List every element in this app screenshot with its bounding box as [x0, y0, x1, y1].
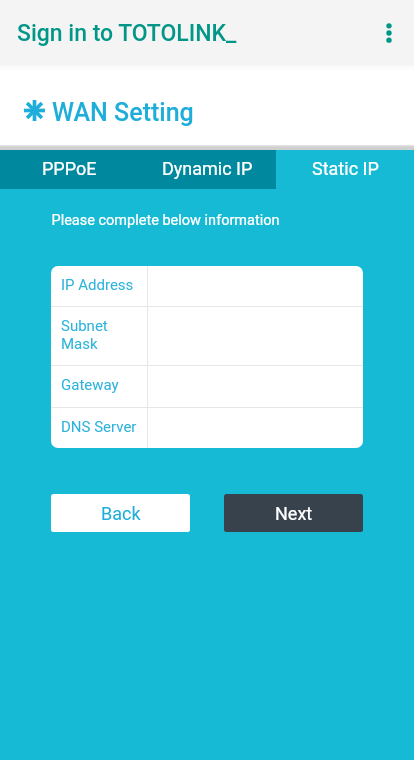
button[interactable]: PPPoE	[0, 150, 138, 189]
staticText: WAN Setting	[52, 98, 194, 127]
staticText: Next	[275, 503, 313, 524]
button[interactable]: Static IP	[276, 150, 414, 189]
button[interactable]: DNS Server	[51, 408, 363, 448]
staticText: IP Address	[61, 276, 134, 294]
staticText: DNS Server	[61, 418, 137, 436]
button[interactable]: Gateway	[51, 366, 363, 407]
button[interactable]: Next	[224, 494, 363, 532]
button[interactable]: Dynamic IP	[138, 150, 276, 189]
button[interactable]: IP Address	[51, 266, 363, 306]
staticText: PPPoE	[42, 158, 97, 179]
staticText: Mask	[61, 335, 98, 353]
staticText: Gateway	[61, 376, 119, 394]
button[interactable]: Subnet	[51, 307, 363, 365]
staticText: Back	[101, 503, 141, 524]
button[interactable]: More options	[367, 11, 411, 55]
staticText: Subnet	[61, 317, 108, 335]
staticText: Sign in to TOTOLINK_	[17, 20, 237, 47]
staticText: Please complete below information	[51, 212, 280, 229]
staticText: Static IP	[312, 158, 379, 179]
button[interactable]: Back	[51, 494, 190, 532]
staticText: Dynamic IP	[162, 158, 253, 179]
